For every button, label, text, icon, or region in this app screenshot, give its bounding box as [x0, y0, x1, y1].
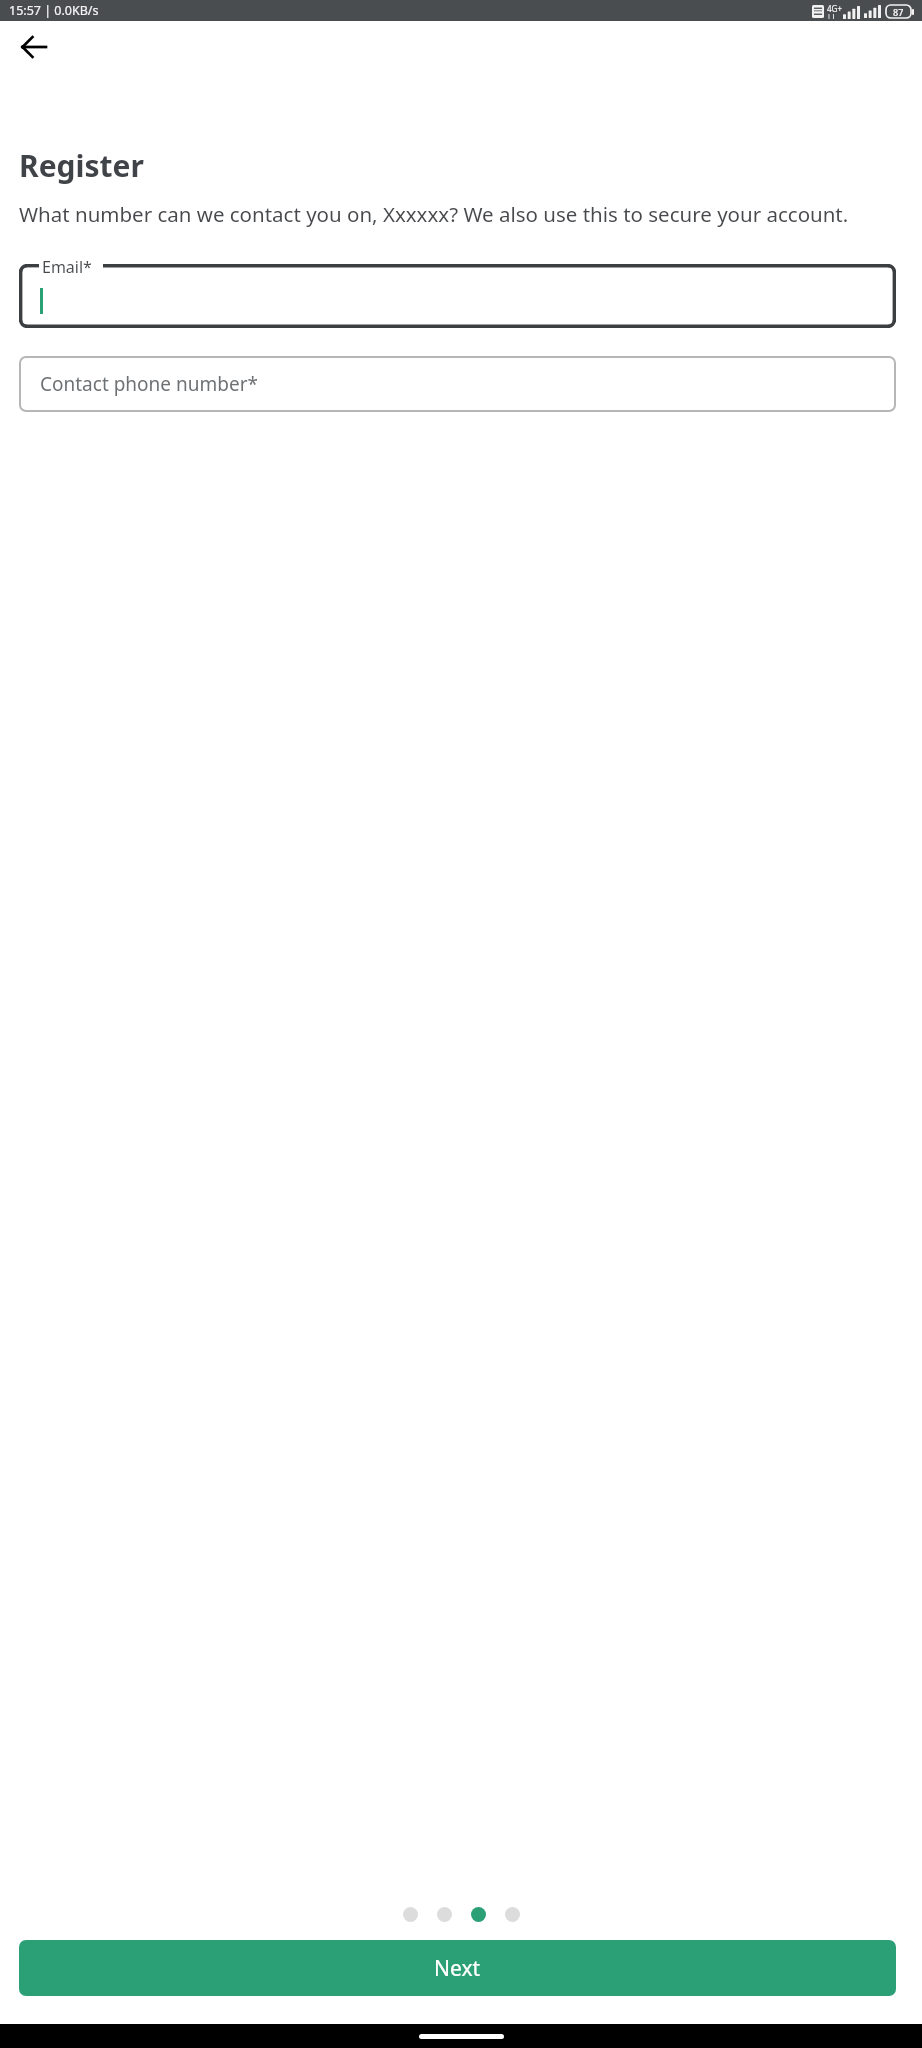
staticText: Register: [19, 145, 144, 186]
button[interactable]: Page 1: [403, 1907, 418, 1922]
staticText: 87: [893, 6, 904, 18]
button[interactable]: Contact phone number*: [19, 356, 896, 412]
button[interactable]: Back: [10, 23, 58, 71]
staticText: 15:57 | 0.0KB/s: [9, 2, 99, 19]
button[interactable]: Home: [419, 2034, 504, 2039]
button[interactable]: Page 4: [505, 1907, 520, 1922]
staticText: Contact phone number*: [40, 371, 258, 397]
button[interactable]: Page 3: [471, 1907, 486, 1922]
staticText: What number can we contact you on, Xxxxx…: [19, 200, 849, 228]
button[interactable]: Page 2: [437, 1907, 452, 1922]
button[interactable]: Next: [19, 1940, 896, 1996]
staticText: 4G+: [827, 3, 842, 14]
staticText: Next: [434, 1954, 481, 1983]
button[interactable]: Email*: [19, 256, 896, 328]
staticText: Email*: [42, 256, 92, 278]
